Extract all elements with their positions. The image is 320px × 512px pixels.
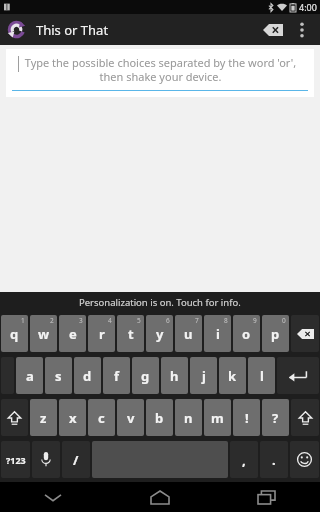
staticText: x <box>69 409 77 427</box>
button[interactable]: l <box>248 357 275 394</box>
button[interactable]: 5 <box>117 315 144 352</box>
button[interactable]: n <box>175 399 202 436</box>
button[interactable]: More options <box>290 14 314 45</box>
button[interactable]: m <box>204 399 231 436</box>
staticText: v <box>127 409 135 427</box>
staticText: . <box>272 451 276 469</box>
staticText: r <box>99 325 105 343</box>
button[interactable]: g <box>132 357 159 394</box>
button[interactable]: 6 <box>146 315 173 352</box>
button[interactable]: z <box>30 399 57 436</box>
button[interactable]: ?123 <box>1 441 30 478</box>
staticText: g <box>141 367 150 385</box>
button[interactable]: Hide keyboard <box>0 482 106 512</box>
button[interactable]: Shift <box>1 399 28 436</box>
staticText: 8 <box>224 316 228 325</box>
button[interactable]: Enter <box>277 357 319 394</box>
button[interactable]: f <box>103 357 130 394</box>
button[interactable]: d <box>74 357 101 394</box>
staticText: k <box>228 367 237 385</box>
staticText: 5 <box>137 316 141 325</box>
staticText: f <box>114 367 120 385</box>
staticText: 3 <box>79 316 83 325</box>
staticText: 4 <box>108 316 112 325</box>
staticText: u <box>184 325 193 343</box>
button[interactable]: v <box>117 399 144 436</box>
staticText: Personalization is on. Touch for info. <box>79 296 241 309</box>
button[interactable]: a <box>16 357 43 394</box>
button[interactable]: Recent apps <box>213 482 320 512</box>
button[interactable]: Clear text <box>256 14 290 45</box>
staticText: , <box>242 451 246 469</box>
button[interactable]: b <box>146 399 173 436</box>
staticText: / <box>73 451 79 469</box>
staticText: ? <box>272 409 279 427</box>
button[interactable]: , <box>230 441 258 478</box>
staticText: p <box>271 325 280 343</box>
button[interactable]: x <box>59 399 86 436</box>
staticText: j <box>202 367 206 385</box>
button[interactable]: 3 <box>59 315 86 352</box>
button[interactable]: j <box>190 357 217 394</box>
staticText: Type the possible choices separated by t… <box>19 55 302 84</box>
staticText: i <box>216 325 220 343</box>
button[interactable]: 8 <box>204 315 231 352</box>
button[interactable]: h <box>161 357 188 394</box>
button[interactable]: 1 <box>1 315 28 352</box>
staticText: 0 <box>282 316 286 325</box>
staticText: a <box>26 367 34 385</box>
staticText: q <box>10 325 19 343</box>
button[interactable]: 7 <box>175 315 202 352</box>
staticText: 6 <box>166 316 170 325</box>
button[interactable]: Voice input <box>32 441 60 478</box>
button[interactable]: Home <box>106 482 213 512</box>
staticText: l <box>260 367 264 385</box>
button[interactable]: / <box>62 441 90 478</box>
button[interactable]: . <box>260 441 288 478</box>
button[interactable]: 4 <box>88 315 115 352</box>
staticText: o <box>242 325 251 343</box>
staticText: 9 <box>253 316 257 325</box>
button[interactable]: Emoji <box>290 441 319 478</box>
button[interactable]: 0 <box>262 315 289 352</box>
staticText: w <box>38 325 50 343</box>
button[interactable]: k <box>219 357 246 394</box>
button[interactable]: 9 <box>233 315 260 352</box>
staticText: e <box>69 325 77 343</box>
staticText: s <box>55 367 62 385</box>
button[interactable]: 2 <box>30 315 57 352</box>
staticText: h <box>170 367 179 385</box>
button[interactable]: ! <box>233 399 260 436</box>
staticText: n <box>184 409 193 427</box>
staticText: b <box>155 409 164 427</box>
staticText: 7 <box>195 316 199 325</box>
button[interactable]: ? <box>262 399 289 436</box>
button[interactable]: Backspace <box>291 315 319 352</box>
button[interactable]: Type the possible choices separated by t… <box>6 49 314 97</box>
button[interactable]: c <box>88 399 115 436</box>
staticText: 1 <box>21 316 25 325</box>
staticText: y <box>156 325 164 343</box>
staticText: d <box>83 367 92 385</box>
staticText: ! <box>245 409 249 427</box>
button[interactable]: s <box>45 357 72 394</box>
button[interactable]: Shift <box>291 399 319 436</box>
staticText: t <box>128 325 134 343</box>
staticText: ?123 <box>6 454 26 466</box>
staticText: c <box>98 409 105 427</box>
staticText: z <box>40 409 47 427</box>
staticText: 2 <box>50 316 54 325</box>
staticText: 4:00 <box>299 1 317 13</box>
staticText: This or That <box>36 21 109 39</box>
staticText: m <box>211 409 224 427</box>
